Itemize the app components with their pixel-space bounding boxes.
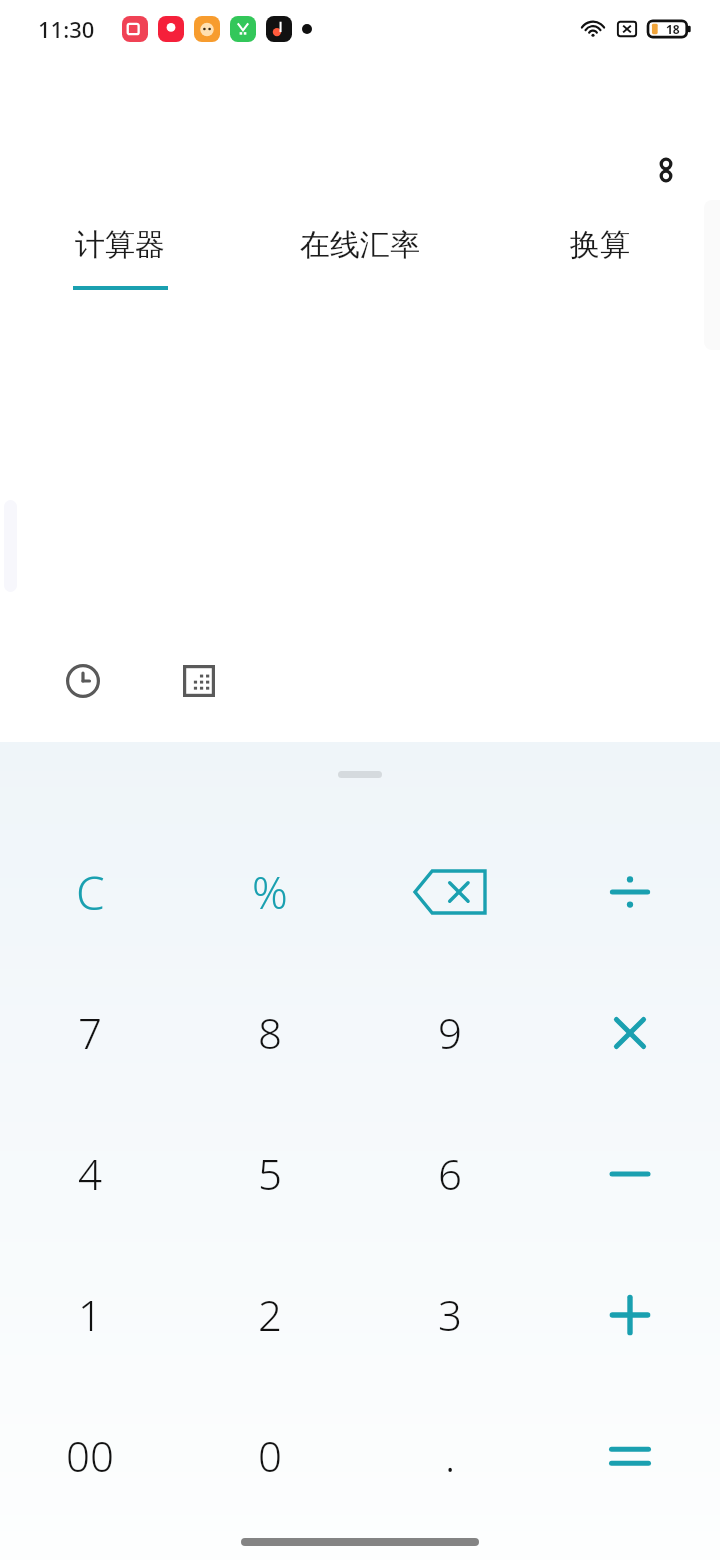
staticText: 18: [666, 21, 680, 37]
button[interactable]: Divide: [540, 822, 720, 962]
staticText: 8: [258, 1004, 282, 1061]
staticText: .: [445, 1427, 456, 1484]
button[interactable]: More options: [634, 138, 698, 202]
button[interactable]: 8: [180, 962, 360, 1103]
staticText: 3: [438, 1286, 462, 1343]
staticText: 00: [66, 1427, 114, 1484]
button[interactable]: C: [0, 822, 180, 962]
button[interactable]: 6: [360, 1103, 540, 1244]
button[interactable]: 00: [0, 1385, 180, 1526]
button[interactable]: 在线汇率: [240, 218, 480, 298]
button[interactable]: 5: [180, 1103, 360, 1244]
staticText: 换算: [570, 226, 630, 264]
staticText: 在线汇率: [300, 226, 420, 264]
button[interactable]: 2: [180, 1244, 360, 1385]
button[interactable]: Multiply: [540, 962, 720, 1103]
button[interactable]: Backspace: [360, 822, 540, 962]
button[interactable]: .: [360, 1385, 540, 1526]
button[interactable]: 1: [0, 1244, 180, 1385]
button[interactable]: 换算: [480, 218, 720, 298]
button[interactable]: 3: [360, 1244, 540, 1385]
button[interactable]: 计算器: [0, 218, 240, 298]
button[interactable]: Keypad: [168, 650, 230, 712]
staticText: 4: [78, 1145, 102, 1202]
button[interactable]: History: [52, 650, 114, 712]
staticText: 6: [438, 1145, 462, 1202]
button[interactable]: 7: [0, 962, 180, 1103]
staticText: %: [252, 862, 288, 922]
staticText: 5: [258, 1145, 282, 1202]
staticText: 0: [258, 1427, 282, 1484]
staticText: 11:30: [38, 14, 95, 44]
button[interactable]: 0: [180, 1385, 360, 1526]
button[interactable]: Minus: [540, 1103, 720, 1244]
button[interactable]: %: [180, 822, 360, 962]
button[interactable]: Equals: [540, 1385, 720, 1526]
staticText: 1: [78, 1286, 102, 1343]
staticText: 9: [438, 1004, 462, 1061]
staticText: 2: [258, 1286, 282, 1343]
staticText: 7: [78, 1004, 102, 1061]
button[interactable]: 9: [360, 962, 540, 1103]
button[interactable]: 4: [0, 1103, 180, 1244]
button[interactable]: Plus: [540, 1244, 720, 1385]
staticText: C: [76, 861, 105, 924]
staticText: 计算器: [75, 226, 165, 264]
